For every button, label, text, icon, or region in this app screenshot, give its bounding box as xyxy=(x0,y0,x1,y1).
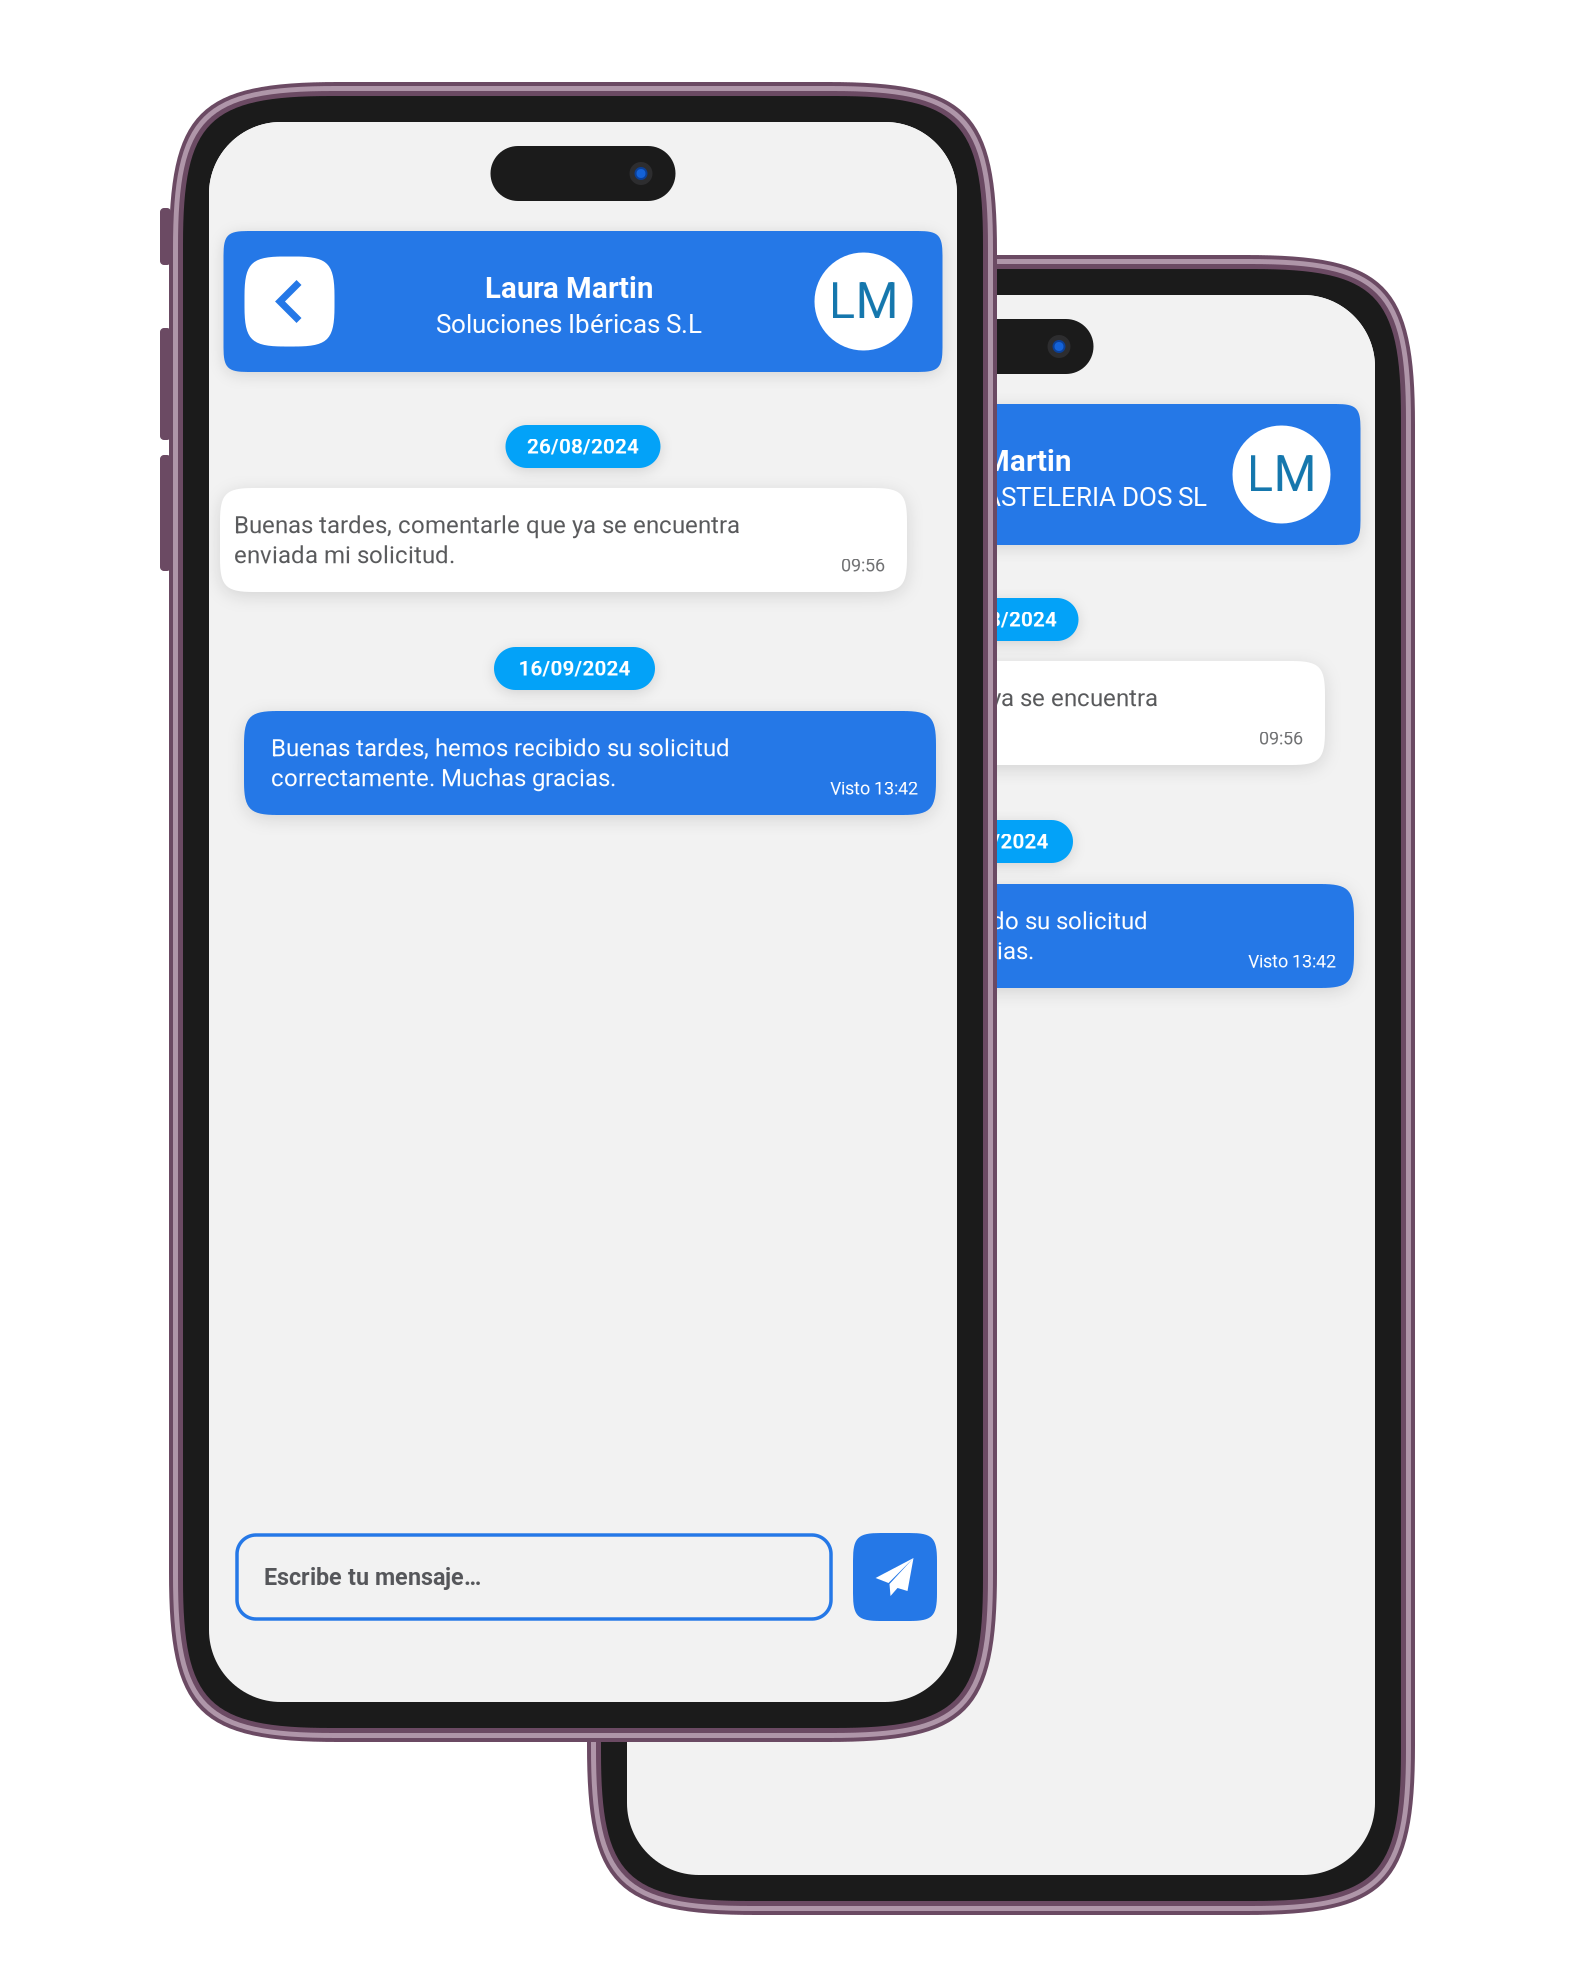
staticText: Laura Martin xyxy=(903,444,1071,478)
staticText: Laura Martin xyxy=(485,271,653,305)
staticText: 26/08/2024 xyxy=(527,434,639,459)
staticText: Visto 13:42 xyxy=(830,778,918,799)
button[interactable]: Back xyxy=(244,256,334,346)
button[interactable]: Back xyxy=(662,429,752,519)
staticText: PASTELERIA DOS SL xyxy=(969,482,1207,512)
staticText: 26/08/2024 xyxy=(945,607,1057,632)
staticText: correctamente. Muchas gracias. xyxy=(689,937,1034,965)
staticText: 09:56 xyxy=(841,555,885,576)
staticText: LM xyxy=(1246,446,1316,503)
staticText: enviada mi solicitud. xyxy=(652,714,873,742)
staticText: correctamente. Muchas gracias. xyxy=(271,764,616,792)
staticText: 16/09/2024 xyxy=(936,829,1048,854)
staticText: 16/09/2024 xyxy=(518,656,630,681)
staticText: Soluciones Ibéricas S.L xyxy=(436,309,702,339)
staticText: Buenas tardes, hemos recibido su solicit… xyxy=(271,734,730,762)
staticText: Buenas tardes, hemos recibido su solicit… xyxy=(689,907,1148,935)
staticText: Buenas tardes, comentarle que ya se encu… xyxy=(234,511,740,539)
button[interactable]: Escribe tu mensaje… xyxy=(237,1535,831,1619)
button[interactable]: Send xyxy=(853,1533,937,1621)
staticText: Buenas tardes, comentarle que ya se encu… xyxy=(652,684,1158,712)
staticText: Escribe tu mensaje… xyxy=(264,1563,481,1591)
staticText: enviada mi solicitud. xyxy=(234,541,455,569)
staticText: 09:56 xyxy=(1259,728,1303,749)
staticText: Visto 13:42 xyxy=(1248,951,1336,972)
staticText: LM xyxy=(828,273,898,330)
